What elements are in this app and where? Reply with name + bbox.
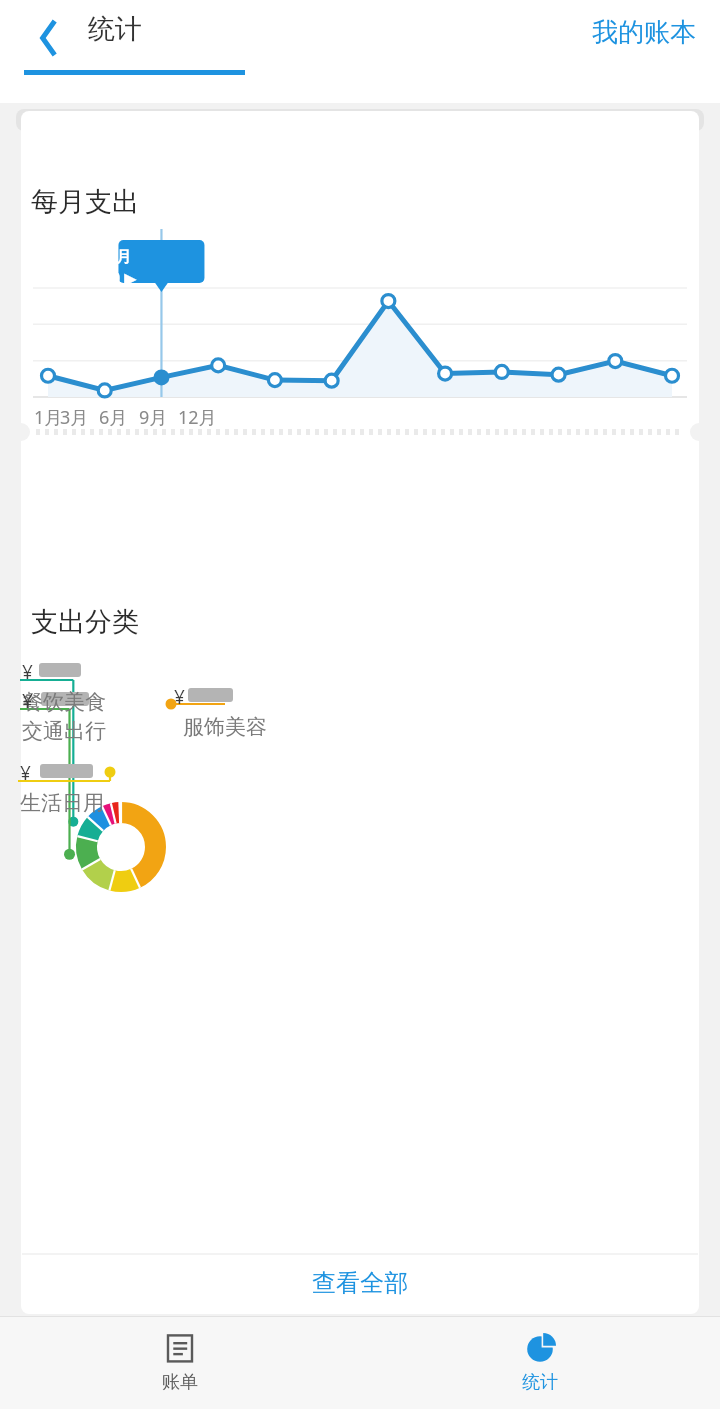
staticText: 交通出行 [22,718,106,744]
staticText: 餐饮美食 [22,689,106,715]
button[interactable]: 我的账本 [580,4,708,61]
staticText: 12月 [178,405,217,430]
button[interactable]: ¥ [22,659,106,715]
staticText: 1月 [34,405,63,430]
staticText: 9月 [139,405,168,430]
button[interactable]: Back [18,8,78,68]
staticText: 3月 [60,405,89,430]
staticText: ¥6313.60 ▶ [51,267,137,289]
button[interactable]: ¥ [174,684,258,740]
staticText: 每月支出 [31,185,139,219]
staticText: 支出分类 [31,605,139,639]
staticText: 查看全部 [312,1268,408,1298]
staticText: 统计 [522,1371,558,1394]
staticText: ¥ [174,684,185,710]
staticText: 2019年3月 [58,246,131,266]
staticText: 生活日用 [20,790,104,816]
staticText: ¥ [22,688,33,714]
staticText: ¥ [20,760,31,786]
staticText: 统计 [88,12,142,46]
button[interactable]: ¥ [22,688,106,744]
button[interactable]: 账单 [0,1325,360,1402]
staticText: 6月 [99,405,128,430]
staticText: 我的账本 [592,16,696,49]
button[interactable]: ¥ [20,760,104,816]
button[interactable]: 2019年3月 [51,242,137,289]
staticText: 服饰美容 [183,714,267,740]
button[interactable]: 查看全部 [0,1255,720,1310]
button[interactable]: 统计 [360,1325,720,1402]
staticText: ¥ [22,659,33,685]
staticText: 账单 [162,1371,198,1394]
